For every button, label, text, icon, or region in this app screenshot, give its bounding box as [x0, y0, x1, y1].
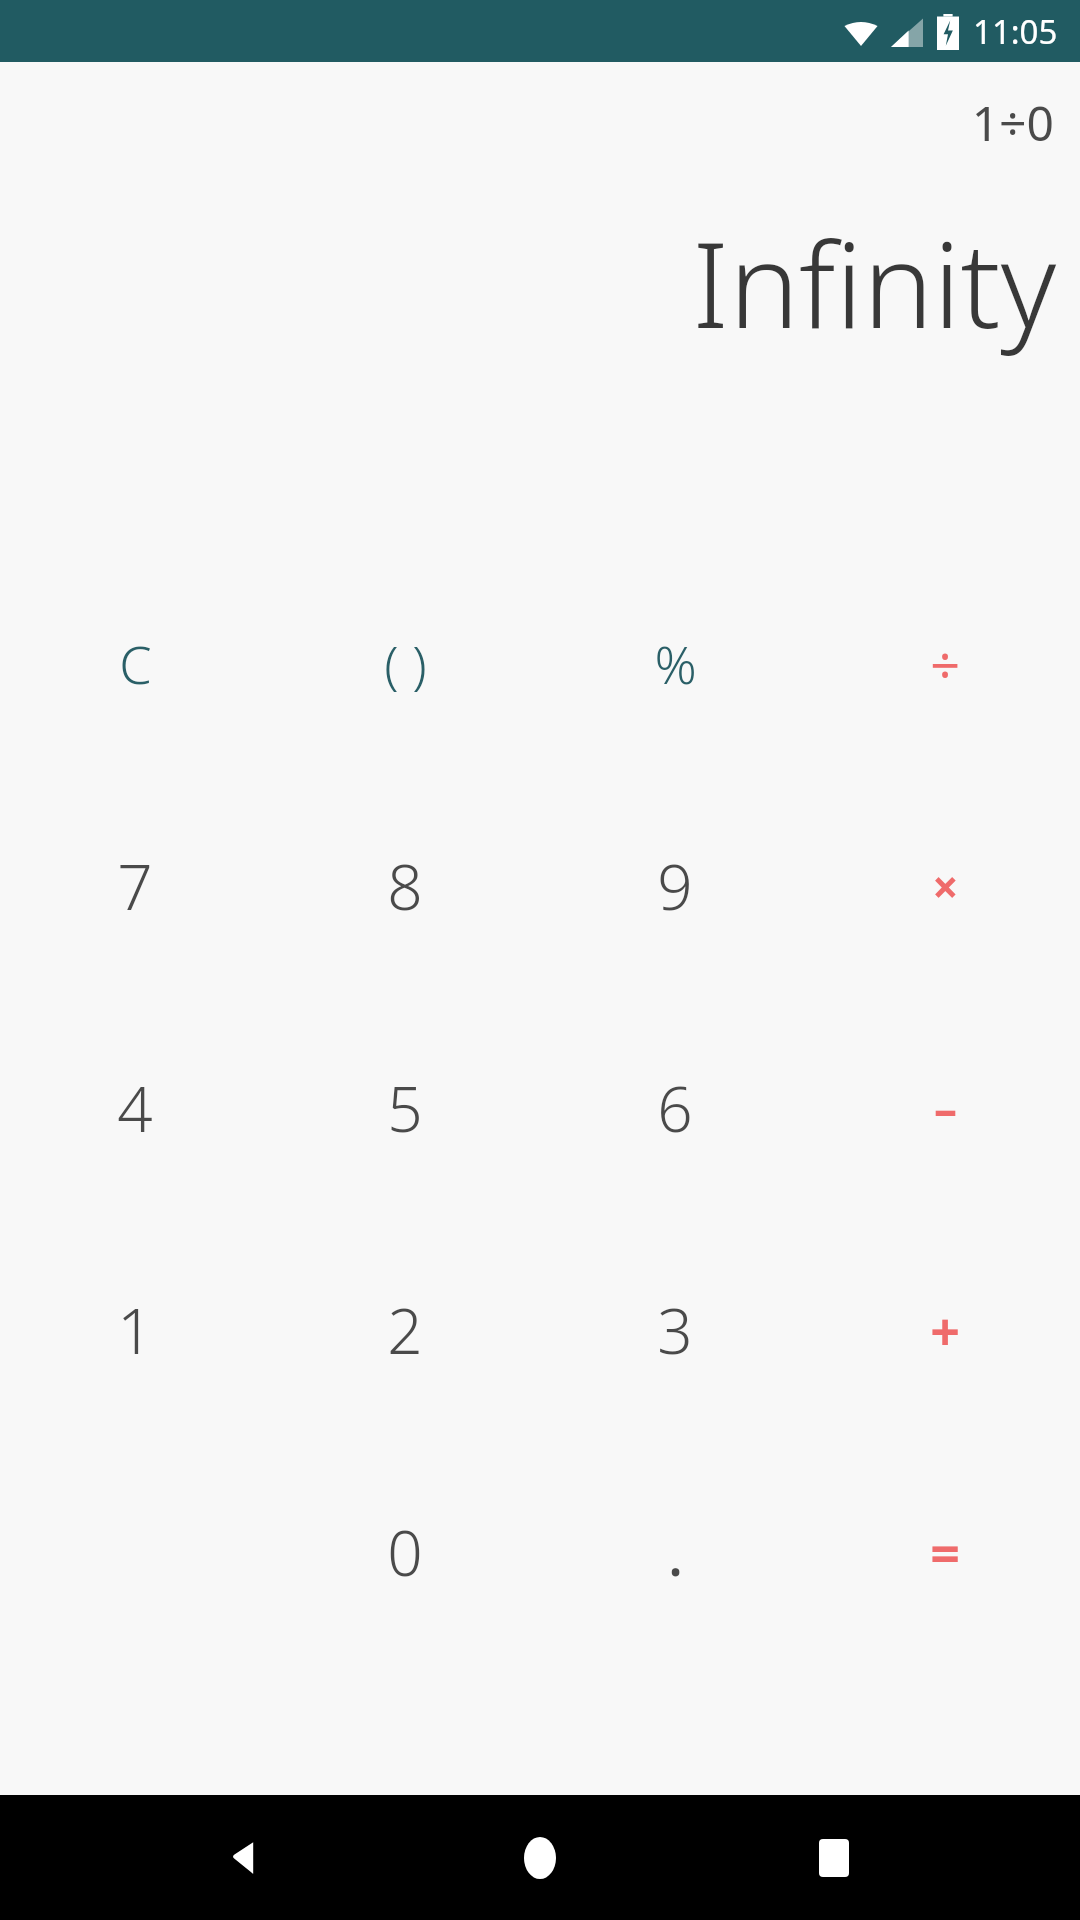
staticText: ÷ — [930, 628, 960, 699]
staticText: × — [932, 855, 959, 918]
button[interactable]: ( ) — [270, 552, 540, 775]
button[interactable]: . — [540, 1441, 810, 1663]
staticText: % — [654, 628, 697, 699]
staticText: + — [930, 1295, 960, 1366]
button[interactable]: 5 — [270, 997, 540, 1219]
staticText: 6 — [657, 1066, 693, 1150]
button[interactable]: Add — [810, 1219, 1080, 1441]
button[interactable]: Home — [492, 1810, 588, 1906]
button[interactable]: Multiply — [810, 775, 1080, 997]
button[interactable]: 1 — [0, 1219, 270, 1441]
staticText: 1 — [117, 1288, 153, 1372]
button[interactable]: Subtract — [810, 997, 1080, 1219]
button[interactable]: Divide — [810, 552, 1080, 775]
staticText: C — [119, 628, 152, 699]
staticText: – — [934, 1077, 957, 1140]
button[interactable]: 6 — [540, 997, 810, 1219]
button[interactable]: 4 — [0, 997, 270, 1219]
staticText: 4 — [117, 1066, 153, 1150]
staticText: Infinity — [692, 202, 1056, 363]
staticText: ( ) — [384, 628, 427, 699]
staticText: 8 — [387, 844, 423, 928]
staticText: 9 — [657, 844, 693, 928]
staticText: 2 — [387, 1288, 423, 1372]
button[interactable]: Back — [198, 1810, 294, 1906]
staticText: 0 — [387, 1510, 423, 1594]
button[interactable]: 9 — [540, 775, 810, 997]
staticText: . — [667, 1510, 684, 1594]
staticText: 7 — [117, 844, 153, 928]
button[interactable]: C — [0, 552, 270, 775]
button[interactable]: 0 — [270, 1441, 540, 1663]
button[interactable]: Recents — [786, 1810, 882, 1906]
button[interactable]: 7 — [0, 775, 270, 997]
button[interactable]: 3 — [540, 1219, 810, 1441]
staticText: 1÷0 — [971, 90, 1054, 155]
button[interactable]: Equals — [810, 1441, 1080, 1663]
staticText: 5 — [387, 1066, 423, 1150]
button[interactable]: 8 — [270, 775, 540, 997]
button[interactable]: 2 — [270, 1219, 540, 1441]
staticText: 3 — [657, 1288, 693, 1372]
staticText: = — [930, 1517, 960, 1588]
button[interactable]: % — [540, 552, 810, 775]
staticText: 11:05 — [973, 9, 1058, 54]
